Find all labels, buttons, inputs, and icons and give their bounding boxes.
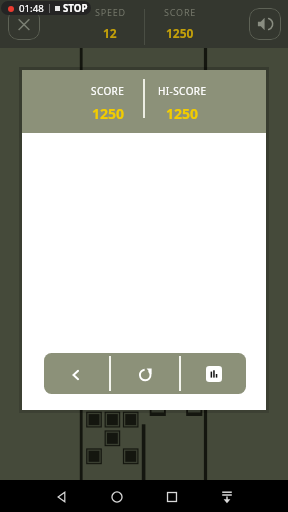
button[interactable]: Sound xyxy=(249,8,281,40)
button[interactable]: Restart xyxy=(111,353,179,394)
staticText: SCORE xyxy=(91,84,125,98)
staticText: SCORE xyxy=(164,6,197,18)
button[interactable]: Back xyxy=(34,481,89,512)
staticText: 1250 xyxy=(166,104,199,123)
staticText: HI-SCORE xyxy=(158,84,207,98)
staticText: 01:48 xyxy=(19,2,44,15)
staticText: 1250 xyxy=(166,25,194,41)
button[interactable]: Close xyxy=(8,8,40,40)
button[interactable]: Stop recording xyxy=(1,1,91,15)
staticText: 12 xyxy=(103,25,117,41)
button[interactable]: Statistics xyxy=(181,353,246,394)
staticText: SPEED xyxy=(95,6,126,18)
button[interactable]: Back xyxy=(44,353,109,394)
button[interactable]: Home xyxy=(89,481,144,512)
button[interactable]: Recent apps xyxy=(144,481,199,512)
staticText: 1250 xyxy=(92,104,125,123)
staticText: STOP xyxy=(63,2,88,15)
button[interactable]: Hide xyxy=(199,481,254,512)
